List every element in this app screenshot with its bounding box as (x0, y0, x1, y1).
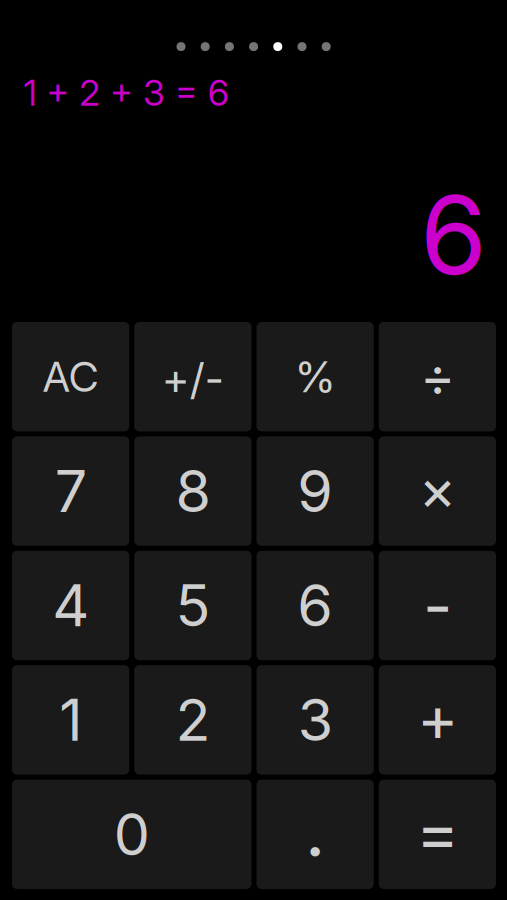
button[interactable]: 5 (134, 551, 251, 660)
staticText: 8 (175, 456, 210, 526)
staticText: 1 + 2 + 3 = 6 (23, 71, 229, 114)
staticText: 1 (59, 685, 82, 755)
button[interactable]: AC (12, 322, 129, 431)
staticText: + (417, 680, 458, 756)
button[interactable]: 4 (12, 551, 129, 660)
staticText: 3 (298, 685, 333, 755)
button[interactable]: % (256, 322, 374, 431)
staticText: ÷ (420, 344, 455, 409)
button[interactable]: +/- (134, 322, 251, 431)
button[interactable]: × (379, 436, 496, 546)
button[interactable]: = (379, 780, 496, 889)
staticText: +/- (161, 353, 224, 404)
staticText: . (305, 787, 326, 874)
staticText: - (423, 567, 452, 644)
button[interactable]: 9 (256, 436, 374, 546)
button[interactable]: 7 (12, 436, 129, 546)
staticText: 6 (297, 571, 333, 640)
button[interactable]: . (256, 780, 374, 889)
staticText: × (418, 454, 456, 524)
staticText: 0 (114, 800, 150, 869)
staticText: = (416, 793, 459, 872)
button[interactable]: - (379, 551, 496, 660)
button[interactable]: 6 (256, 551, 374, 660)
staticText: 5 (175, 571, 210, 640)
button[interactable]: 3 (256, 665, 374, 775)
button[interactable]: 0 (12, 780, 251, 889)
staticText: 4 (52, 571, 89, 640)
button[interactable]: ÷ (379, 322, 496, 431)
button[interactable]: 2 (134, 665, 251, 775)
button[interactable]: 1 (12, 665, 129, 775)
staticText: 6 (420, 170, 487, 300)
button[interactable]: + (379, 665, 496, 775)
button[interactable]: 8 (134, 436, 251, 546)
staticText: 2 (175, 685, 210, 755)
staticText: % (294, 351, 336, 402)
staticText: 9 (297, 456, 333, 526)
staticText: 7 (55, 456, 87, 526)
staticText: AC (43, 352, 99, 402)
